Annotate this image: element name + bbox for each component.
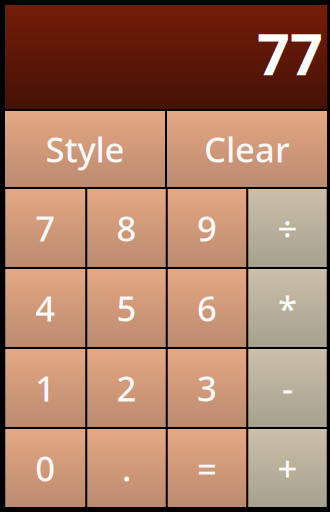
button[interactable]: 9 (168, 189, 246, 267)
staticText: Style (45, 126, 124, 172)
staticText: - (282, 365, 293, 411)
staticText: 1 (35, 365, 55, 411)
staticText: 5 (116, 285, 136, 331)
button[interactable]: 4 (5, 269, 85, 347)
button[interactable]: Multiply (248, 269, 327, 347)
button[interactable]: Divide (248, 189, 327, 267)
button[interactable]: Style (5, 111, 165, 187)
button[interactable]: 5 (87, 269, 166, 347)
button[interactable]: 3 (168, 349, 246, 427)
staticText: ÷ (277, 205, 297, 251)
button[interactable]: Decimal point (87, 429, 166, 507)
button[interactable]: Clear (167, 111, 327, 187)
staticText: = (197, 445, 217, 491)
button[interactable]: 7 (5, 189, 85, 267)
button[interactable]: Minus (248, 349, 327, 427)
staticText: 0 (35, 445, 55, 491)
staticText: * (278, 285, 297, 331)
button[interactable]: 2 (87, 349, 166, 427)
staticText: 3 (197, 365, 217, 411)
staticText: 6 (197, 285, 217, 331)
button[interactable]: Equals (168, 429, 246, 507)
staticText: 4 (35, 285, 55, 331)
button[interactable]: Plus (248, 429, 327, 507)
button[interactable]: 0 (5, 429, 85, 507)
staticText: 77 (257, 15, 323, 91)
staticText: 2 (116, 365, 136, 411)
button[interactable]: 1 (5, 349, 85, 427)
staticText: + (277, 445, 297, 491)
staticText: 9 (197, 205, 217, 251)
button[interactable]: 6 (168, 269, 246, 347)
staticText: . (122, 445, 131, 491)
staticText: Clear (204, 126, 290, 172)
staticText: 8 (116, 205, 136, 251)
staticText: 7 (35, 205, 55, 251)
button[interactable]: 8 (87, 189, 166, 267)
